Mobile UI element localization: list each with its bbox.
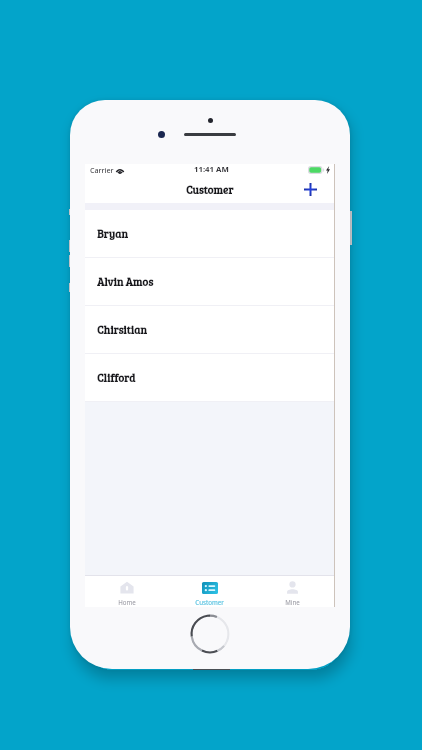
button[interactable]: Bryan	[85, 210, 334, 258]
button[interactable]: Clifford	[85, 354, 334, 402]
staticText: Carrier	[90, 165, 114, 175]
staticText: Alvin Amos	[97, 274, 154, 289]
staticText: Mine	[285, 598, 300, 606]
button[interactable]: Home	[85, 576, 168, 607]
button[interactable]: Alvin Amos	[85, 258, 334, 306]
button[interactable]: Customer	[168, 576, 251, 607]
button[interactable]: Chirsitian	[85, 306, 334, 354]
staticText: Bryan	[97, 226, 128, 241]
staticText: 11:41 AM	[194, 164, 229, 175]
staticText: Home	[118, 598, 136, 606]
button[interactable]: Add customer	[299, 178, 321, 200]
staticText: Customer	[195, 598, 224, 606]
staticText: Customer	[186, 182, 234, 197]
staticText: Chirsitian	[97, 322, 147, 337]
staticText: Clifford	[97, 370, 136, 385]
button[interactable]: Mine	[251, 576, 334, 607]
